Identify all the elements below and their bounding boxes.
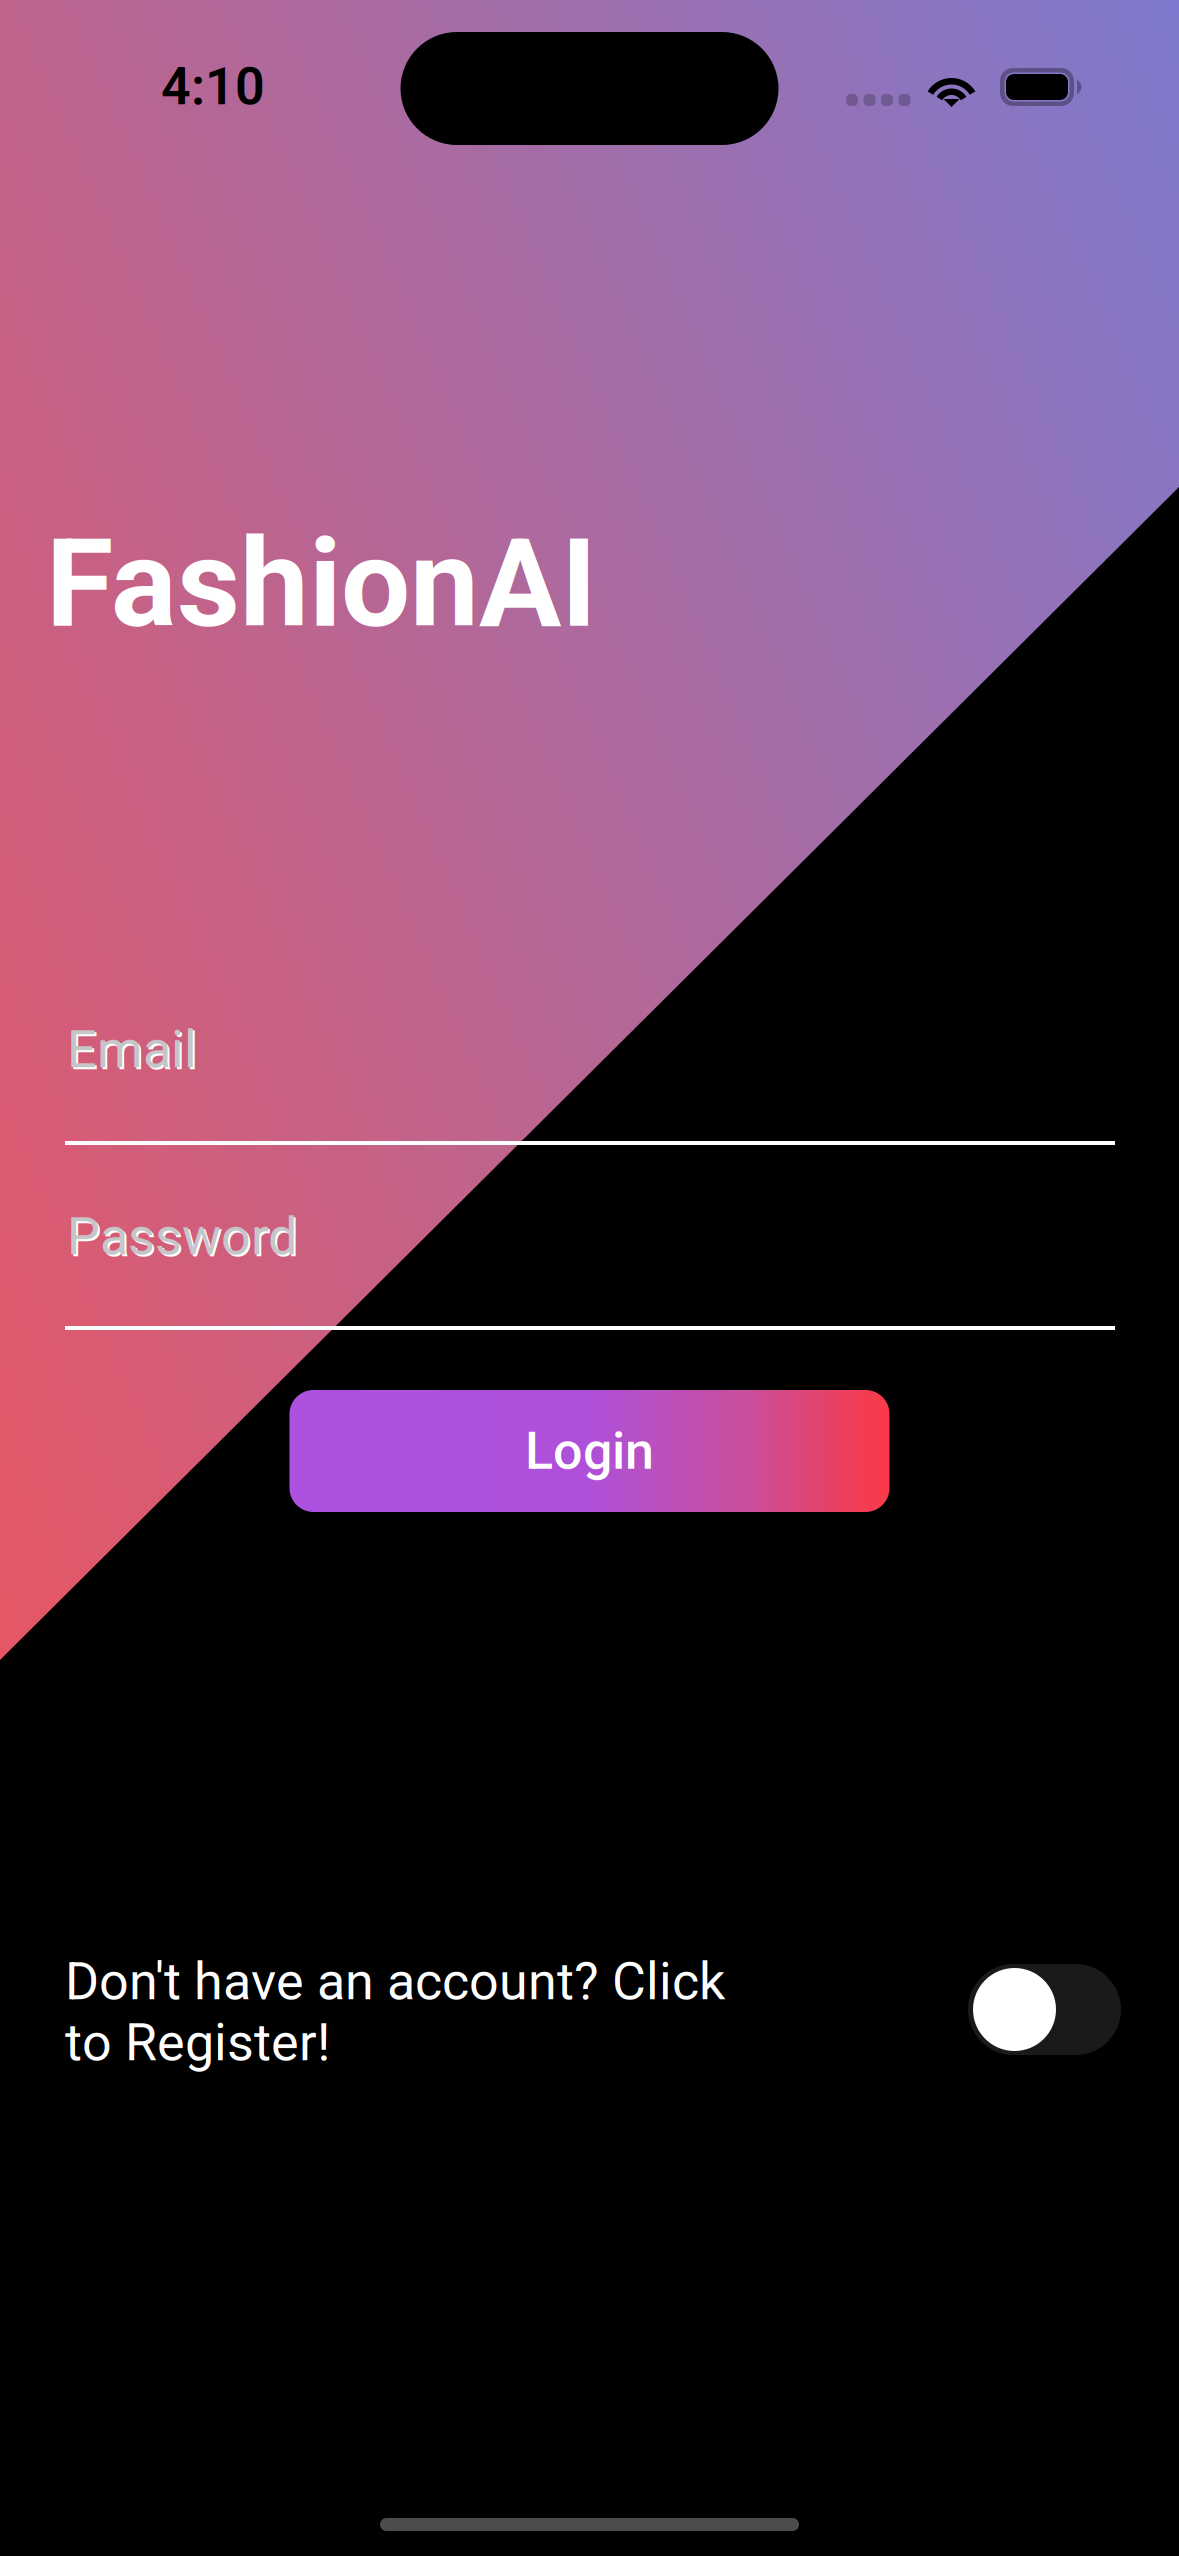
staticText: Email	[67, 1019, 197, 1080]
button[interactable]: Login	[289, 1390, 889, 1512]
staticText: FashionAI	[46, 512, 597, 656]
button[interactable]: Register toggle	[968, 1964, 1121, 2055]
staticText: Email	[69, 1021, 199, 1082]
staticText: Login	[525, 1420, 654, 1481]
staticText: 4:10	[161, 56, 265, 117]
staticText: Don't have an account? Click to Register…	[65, 1951, 725, 2073]
button[interactable]: Don't have an account? Click to Register…	[65, 1951, 755, 2073]
staticText: Password	[67, 1206, 297, 1267]
staticText: Password	[69, 1208, 299, 1269]
